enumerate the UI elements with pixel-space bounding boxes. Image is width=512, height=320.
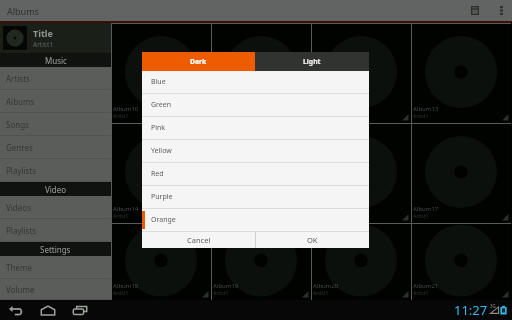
- button[interactable]: Artists: [0, 67, 111, 90]
- button[interactable]: Light: [255, 52, 369, 71]
- button[interactable]: Album15: [211, 123, 311, 223]
- button[interactable]: Volume: [0, 279, 111, 300]
- button[interactable]: Album20: [311, 223, 411, 300]
- staticText: Album17: [413, 205, 439, 213]
- button[interactable]: Dark: [142, 52, 255, 71]
- button[interactable]: Cancel: [142, 232, 255, 248]
- staticText: Artist1: [113, 213, 129, 220]
- staticText: Orange: [151, 215, 176, 225]
- staticText: Album10: [113, 105, 139, 113]
- button[interactable]: Recent apps: [64, 300, 96, 320]
- button[interactable]: Yellow: [142, 140, 369, 162]
- button[interactable]: Album11: [211, 23, 311, 123]
- staticText: Pink: [151, 123, 166, 133]
- staticText: Artist1: [33, 40, 54, 49]
- staticText: Genres: [6, 142, 33, 153]
- button[interactable]: Pink: [142, 117, 369, 139]
- staticText: Artist1: [313, 113, 329, 120]
- button[interactable]: Album12: [311, 23, 411, 123]
- button[interactable]: Red: [142, 163, 369, 185]
- staticText: OK: [307, 235, 318, 245]
- staticText: 3G: [490, 303, 496, 309]
- button[interactable]: View as list: [463, 0, 487, 21]
- staticText: Playlists: [6, 165, 37, 176]
- staticText: Volume: [6, 284, 35, 295]
- button[interactable]: Blue: [142, 71, 369, 93]
- staticText: Cancel: [187, 235, 211, 245]
- button[interactable]: Purple: [142, 186, 369, 208]
- button[interactable]: Album14: [111, 123, 211, 223]
- staticText: Artist1: [113, 113, 129, 120]
- staticText: Album19: [213, 282, 239, 290]
- staticText: Artist1: [313, 290, 329, 297]
- button[interactable]: Playlists: [0, 219, 111, 242]
- button[interactable]: Green: [142, 94, 369, 116]
- button[interactable]: Album17: [411, 123, 511, 223]
- staticText: Artist1: [213, 290, 229, 297]
- button[interactable]: More options: [491, 0, 512, 21]
- button[interactable]: Album16: [311, 123, 411, 223]
- button[interactable]: Theme: [0, 256, 111, 279]
- staticText: Artist1: [213, 113, 229, 120]
- staticText: Videos: [6, 202, 31, 213]
- staticText: Album14: [113, 205, 139, 213]
- staticText: Album18: [113, 282, 139, 290]
- button[interactable]: Songs: [0, 113, 111, 136]
- staticText: Artist1: [413, 113, 429, 120]
- staticText: Albums: [6, 96, 35, 107]
- button[interactable]: Title: [0, 23, 111, 53]
- button[interactable]: Album10: [111, 23, 211, 123]
- button[interactable]: Albums: [0, 90, 111, 113]
- staticText: Album13: [413, 105, 439, 113]
- button[interactable]: Album19: [211, 223, 311, 300]
- staticText: Title: [33, 27, 53, 39]
- staticText: Music: [45, 55, 67, 66]
- staticText: Blue: [151, 77, 166, 87]
- staticText: Video: [45, 184, 67, 195]
- staticText: Album21: [413, 282, 439, 290]
- button[interactable]: Orange: [142, 209, 369, 231]
- button[interactable]: OK: [256, 232, 369, 248]
- staticText: Purple: [151, 192, 173, 202]
- button[interactable]: Videos: [0, 196, 111, 219]
- staticText: Theme: [6, 262, 32, 273]
- staticText: Albums: [7, 5, 39, 17]
- button[interactable]: Playlists: [0, 159, 111, 182]
- staticText: Red: [151, 169, 164, 179]
- staticText: Settings: [40, 244, 71, 255]
- staticText: Album20: [313, 282, 339, 290]
- button[interactable]: Back: [0, 300, 32, 320]
- staticText: 11:27: [454, 301, 488, 319]
- staticText: Album15: [213, 205, 239, 213]
- staticText: Album16: [313, 205, 339, 213]
- staticText: Songs: [6, 119, 29, 130]
- staticText: Artists: [6, 73, 30, 84]
- staticText: Artist1: [413, 213, 429, 220]
- staticText: Artist1: [113, 290, 129, 297]
- button[interactable]: Home: [32, 300, 64, 320]
- staticText: Dark: [190, 57, 207, 66]
- button[interactable]: Genres: [0, 136, 111, 159]
- staticText: Artist1: [413, 290, 429, 297]
- staticText: Playlists: [6, 225, 37, 236]
- button[interactable]: Album13: [411, 23, 511, 123]
- staticText: Green: [151, 100, 172, 110]
- button[interactable]: Album21: [411, 223, 511, 300]
- staticText: Yellow: [151, 146, 172, 156]
- button[interactable]: Album18: [111, 223, 211, 300]
- staticText: Light: [303, 57, 321, 66]
